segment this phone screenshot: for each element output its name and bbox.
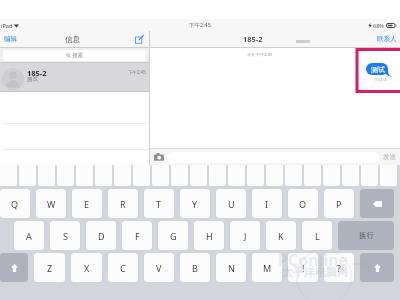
- staticText: 68%: [373, 22, 384, 29]
- button[interactable]: Camera: [154, 153, 164, 161]
- staticText: .com.cn: [352, 261, 368, 266]
- staticText: B: [192, 262, 198, 274]
- staticText: U: [228, 198, 235, 210]
- button[interactable]: U: [216, 189, 246, 218]
- staticText: 太平洋电脑网: [282, 265, 348, 279]
- staticText: D: [98, 230, 105, 242]
- button[interactable]: Shift: [0, 253, 28, 282]
- staticText: P: [336, 198, 342, 210]
- staticText: K: [278, 230, 284, 242]
- button[interactable]: N: [216, 253, 246, 282]
- button[interactable]: T: [144, 189, 174, 218]
- button[interactable]: B: [180, 253, 210, 282]
- staticText: Y: [192, 198, 198, 210]
- staticText: L: [315, 230, 320, 242]
- button[interactable]: E: [72, 189, 102, 218]
- staticText: 今天 下午2:45: [247, 52, 272, 57]
- staticText: A: [26, 230, 32, 242]
- button[interactable]: D: [86, 221, 116, 250]
- button[interactable]: F: [122, 221, 152, 250]
- button[interactable]: A: [14, 221, 44, 250]
- button[interactable]: Backspace: [360, 189, 394, 218]
- staticText: F: [135, 230, 140, 242]
- staticText: V: [156, 262, 162, 274]
- button[interactable]: O: [288, 189, 318, 218]
- staticText: 已送达: [375, 77, 387, 82]
- staticText: C: [120, 262, 126, 274]
- button[interactable]: L: [302, 221, 332, 250]
- button[interactable]: C: [108, 253, 138, 282]
- staticText: PConline: [278, 249, 349, 271]
- button[interactable]: W: [36, 189, 66, 218]
- button[interactable]: Q: [0, 189, 30, 218]
- staticText: H: [206, 230, 213, 242]
- button[interactable]: I: [252, 189, 282, 218]
- button[interactable]: 编辑: [4, 35, 17, 43]
- staticText: Q: [11, 198, 19, 210]
- staticText: M: [263, 262, 272, 274]
- button[interactable]: K: [266, 221, 296, 250]
- button[interactable]: H: [194, 221, 224, 250]
- button[interactable]: R: [108, 189, 138, 218]
- staticText: 信息: [65, 35, 80, 44]
- button[interactable]: V: [144, 253, 174, 282]
- staticText: R: [120, 198, 126, 210]
- staticText: O: [299, 198, 307, 210]
- button[interactable]: S: [50, 221, 80, 250]
- staticText: 185-2: [243, 34, 263, 44]
- button[interactable]: X: [71, 253, 102, 282]
- staticText: G: [170, 230, 177, 242]
- button[interactable]: 联系人: [377, 35, 397, 43]
- staticText: 换行: [359, 231, 374, 240]
- button[interactable]: New message: [135, 35, 144, 44]
- button[interactable]: 185-2: [0, 63, 149, 91]
- button[interactable]: J: [230, 221, 260, 250]
- staticText: !: [302, 262, 305, 274]
- button[interactable]: Z: [34, 253, 65, 282]
- staticText: iPad: [1, 22, 13, 29]
- button[interactable]: G: [158, 221, 188, 250]
- staticText: N: [228, 262, 235, 274]
- button[interactable]: P: [324, 189, 354, 218]
- button[interactable]: !: [288, 253, 318, 282]
- staticText: X: [84, 262, 90, 274]
- staticText: Z: [47, 262, 53, 274]
- button[interactable]: M: [252, 253, 282, 282]
- button[interactable]: 换行: [338, 221, 394, 250]
- button[interactable]: Y: [180, 189, 210, 218]
- staticText: 下午2:45: [128, 69, 146, 75]
- button[interactable]: Shift: [360, 253, 394, 282]
- staticText: 测试: [371, 65, 385, 74]
- button[interactable]: Search: [3, 50, 146, 61]
- staticText: 搜索: [72, 52, 83, 59]
- staticText: 下午2:45: [189, 21, 211, 29]
- button[interactable]: 发送: [383, 153, 396, 161]
- button[interactable]: ?: [324, 253, 354, 282]
- staticText: E: [84, 198, 90, 210]
- staticText: I: [265, 198, 269, 210]
- staticText: W: [47, 198, 56, 210]
- staticText: S: [63, 230, 68, 242]
